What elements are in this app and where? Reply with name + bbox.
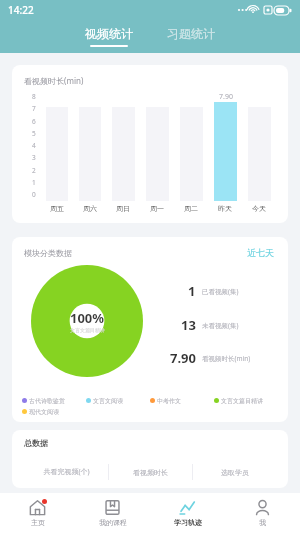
staticText: 7.90 xyxy=(170,349,196,367)
staticText: 已看视频(集) xyxy=(202,287,239,296)
staticText: 学习轨迹 xyxy=(174,518,202,527)
staticText: 中考作文 xyxy=(157,397,181,405)
staticText: 总数据 xyxy=(24,438,48,448)
staticText: 周日 xyxy=(116,204,130,213)
staticText: 周五 xyxy=(50,204,64,213)
other: 我的课程 xyxy=(104,499,121,516)
staticText: 主页 xyxy=(31,518,45,527)
staticText: 6 xyxy=(32,117,36,126)
staticText: 视频统计 xyxy=(85,26,133,41)
staticText: 共看完视频(个) xyxy=(43,467,90,477)
staticText: 7 xyxy=(32,104,36,113)
staticText: 13 xyxy=(181,316,196,334)
other: 我 xyxy=(254,499,271,516)
staticText: 今天 xyxy=(252,204,266,213)
staticText: 100% xyxy=(70,309,105,327)
staticText: 14:22 xyxy=(8,3,34,17)
staticText: 昨天 xyxy=(218,204,232,213)
staticText: 文言文篇目精讲 xyxy=(221,397,263,405)
staticText: 3 xyxy=(32,153,36,162)
staticText: 习题统计 xyxy=(167,26,215,41)
staticText: 我 xyxy=(259,518,266,527)
staticText: 看视频时长(min) xyxy=(24,75,84,86)
staticText: 模块分类数据 xyxy=(24,248,72,258)
staticText: 4 xyxy=(32,141,36,150)
button[interactable]: 习题统计 xyxy=(163,26,219,47)
button[interactable]: 学习轨迹 xyxy=(150,493,225,533)
staticText: 周六 xyxy=(83,204,97,213)
button[interactable]: 我的课程 xyxy=(75,493,150,533)
button[interactable]: 看视频时长 xyxy=(109,468,192,477)
staticText: 现代文阅读 xyxy=(29,408,59,416)
staticText: 5 xyxy=(32,129,36,138)
staticText: 8 xyxy=(32,92,36,101)
staticText: 1 xyxy=(32,178,36,187)
staticText: 选取学员 xyxy=(221,468,249,477)
button[interactable]: 近七天 xyxy=(245,245,276,260)
staticText: 近七天 xyxy=(247,247,274,258)
staticText: 古代诗歌鉴赏 xyxy=(29,397,65,405)
staticText: 看视频时长(min) xyxy=(202,354,251,363)
other: 学习轨迹 xyxy=(179,499,196,516)
other: 主页 xyxy=(29,499,46,516)
staticText: 1 xyxy=(188,282,196,300)
staticText: 看视频时长 xyxy=(133,468,168,477)
staticText: 我的课程 xyxy=(99,518,127,527)
staticText: 文言文阅读 xyxy=(93,397,123,405)
button[interactable]: 主页 xyxy=(0,493,75,533)
staticText: 2 xyxy=(32,166,36,175)
staticText: 0 xyxy=(32,190,36,199)
button[interactable]: 我 xyxy=(225,493,300,533)
staticText: 周一 xyxy=(150,204,164,213)
button[interactable]: 选取学员 xyxy=(193,468,276,477)
staticText: 7.90 xyxy=(219,92,233,102)
staticText: 文言文篇目精讲 xyxy=(70,327,105,333)
staticText: 未看视频(集) xyxy=(202,321,239,330)
button[interactable]: 视频统计 xyxy=(81,26,137,47)
button[interactable]: 共看完视频(个) xyxy=(24,467,108,477)
staticText: 周二 xyxy=(184,204,198,213)
